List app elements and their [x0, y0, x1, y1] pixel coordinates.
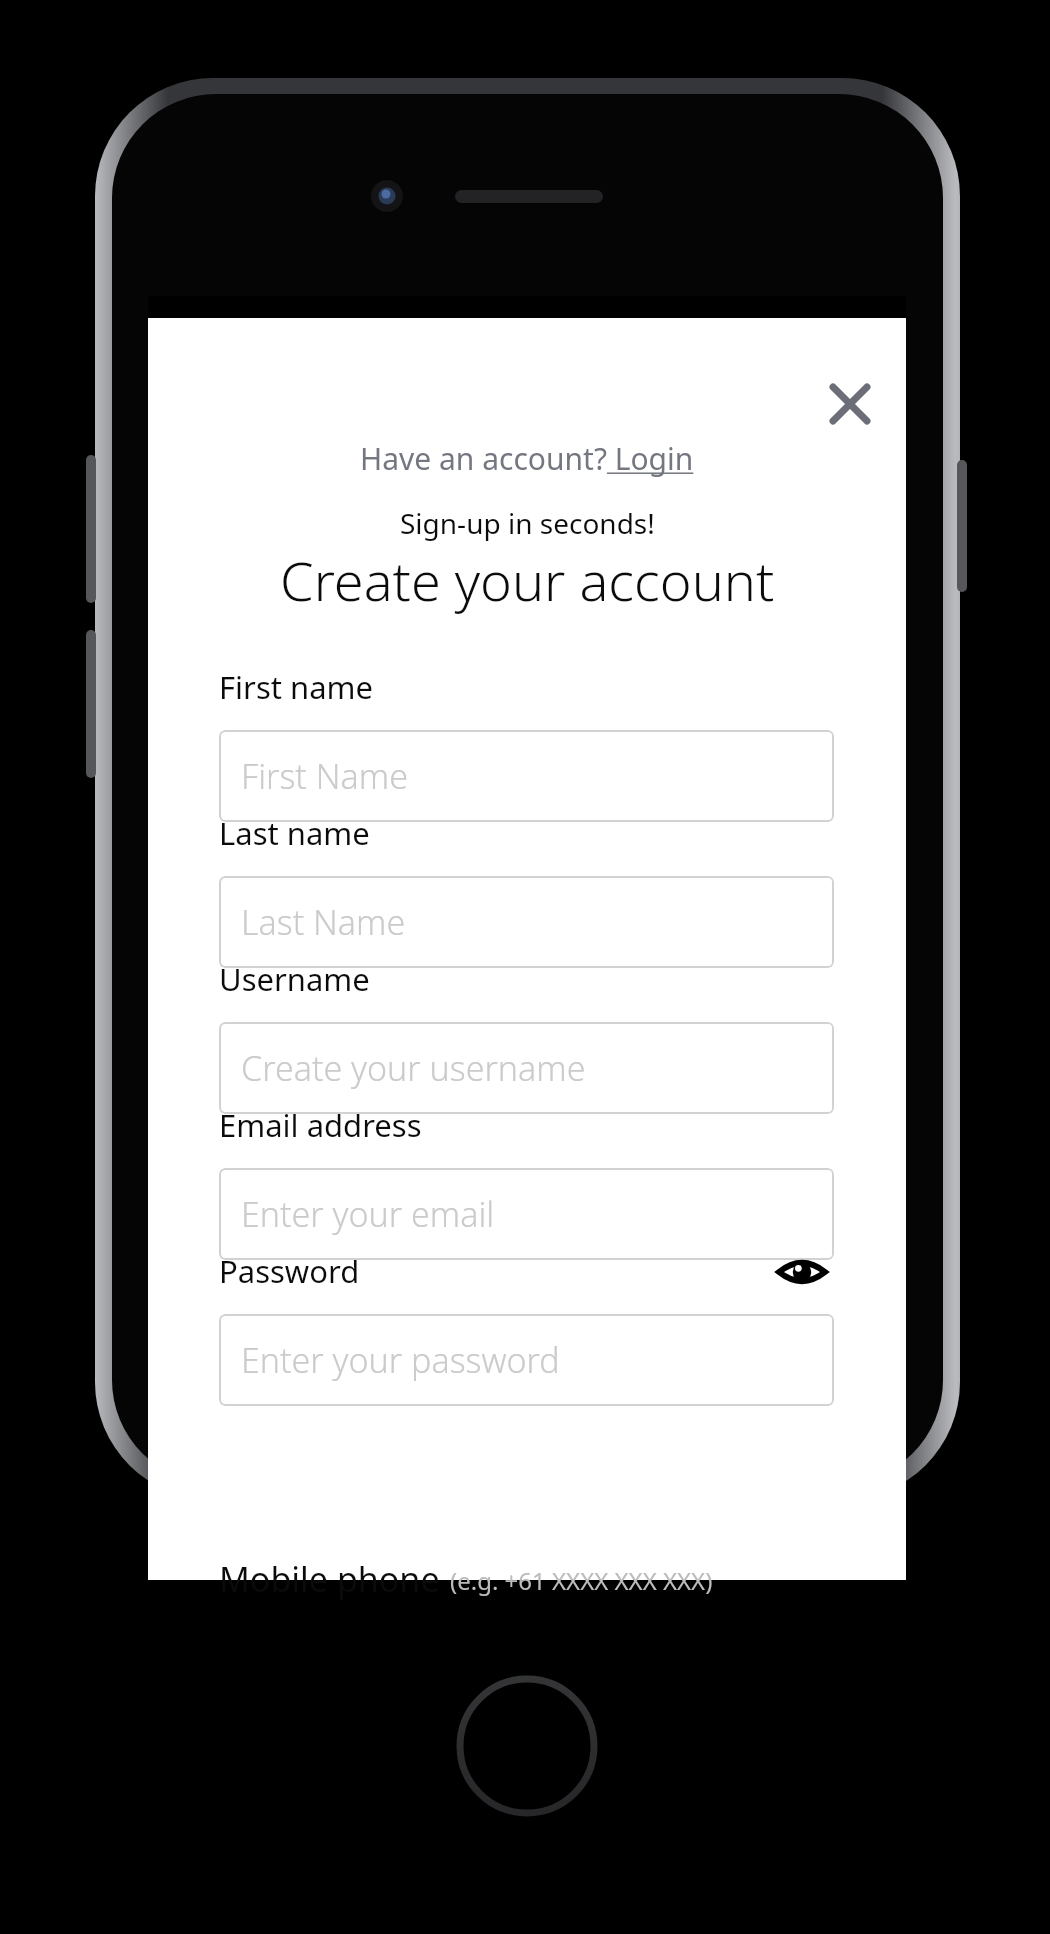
button[interactable]: Enter your email	[219, 1168, 834, 1260]
button[interactable]: Last Name	[219, 876, 834, 968]
staticText: Last name	[219, 812, 370, 854]
staticText: First name	[219, 666, 374, 708]
button[interactable]: Enter your password	[219, 1314, 834, 1406]
staticText: Username	[219, 958, 370, 1000]
staticText: Have an account? Login	[360, 438, 694, 479]
staticText: Enter your password	[241, 1337, 560, 1383]
staticText: Sign-up in seconds!	[400, 504, 655, 542]
staticText: Password	[219, 1250, 360, 1292]
staticText: Create your username	[241, 1045, 586, 1091]
staticText: Enter your email	[241, 1191, 495, 1237]
button[interactable]: Create your username	[219, 1022, 834, 1114]
staticText: First Name	[241, 753, 408, 799]
button[interactable]: Show password	[770, 1240, 834, 1304]
button[interactable]: Have an account? Login	[148, 430, 906, 486]
button[interactable]: Mobile phone	[219, 1556, 713, 1600]
button[interactable]: Close	[816, 370, 884, 438]
button[interactable]: First Name	[219, 730, 834, 822]
staticText: (e.g. +61 XXXX XXX XXX)	[450, 1564, 713, 1597]
staticText: Create your account	[280, 543, 775, 617]
staticText: Last Name	[241, 899, 406, 945]
staticText: Email address	[219, 1104, 422, 1146]
staticText: Mobile phone	[219, 1556, 440, 1600]
